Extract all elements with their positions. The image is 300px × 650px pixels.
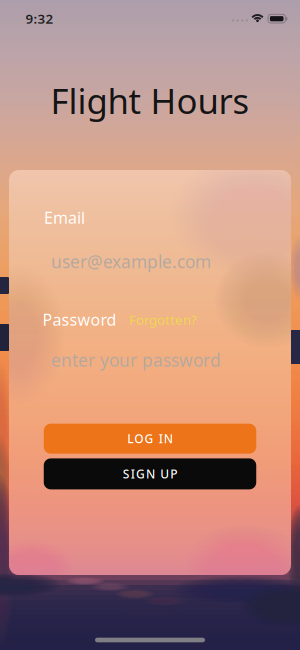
staticText: Forgotten? [129, 311, 197, 328]
staticText: LOG IN [127, 431, 173, 447]
staticText: Flight Hours [50, 77, 249, 123]
staticText: 9:32 [25, 10, 53, 27]
button[interactable]: LOG IN [44, 424, 256, 454]
staticText: user@example.com [51, 250, 211, 273]
button[interactable]: Forgotten? [129, 311, 197, 328]
staticText: Password [42, 309, 116, 330]
staticText: Email [44, 207, 85, 228]
staticText: enter your password [51, 348, 221, 371]
button[interactable]: SIGN UP [44, 458, 256, 489]
staticText: SIGN UP [123, 466, 177, 482]
